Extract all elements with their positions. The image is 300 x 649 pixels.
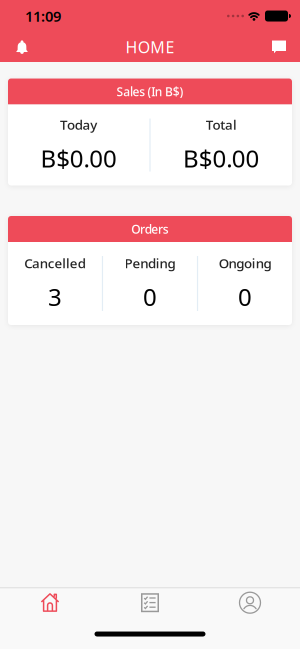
button[interactable]: Notifications xyxy=(7,32,37,62)
staticText: B$0.00 xyxy=(183,142,259,174)
staticText: Ongoing xyxy=(219,254,271,272)
staticText: HOME xyxy=(125,36,175,58)
staticText: Total xyxy=(206,116,237,133)
staticText: 0 xyxy=(238,281,252,313)
staticText: 0 xyxy=(143,281,157,313)
staticText: Today xyxy=(60,116,97,133)
button[interactable]: Orders xyxy=(100,588,200,617)
staticText: Sales (In B$) xyxy=(117,83,183,99)
staticText: 3 xyxy=(48,281,62,313)
button[interactable]: Profile xyxy=(200,588,300,617)
staticText: Pending xyxy=(125,254,175,272)
staticText: Cancelled xyxy=(24,254,86,272)
staticText: Orders xyxy=(131,221,169,237)
staticText: 11:09 xyxy=(25,6,61,26)
button[interactable]: Messages xyxy=(264,32,294,62)
staticText: B$0.00 xyxy=(40,142,117,174)
button[interactable]: Home xyxy=(0,588,100,617)
